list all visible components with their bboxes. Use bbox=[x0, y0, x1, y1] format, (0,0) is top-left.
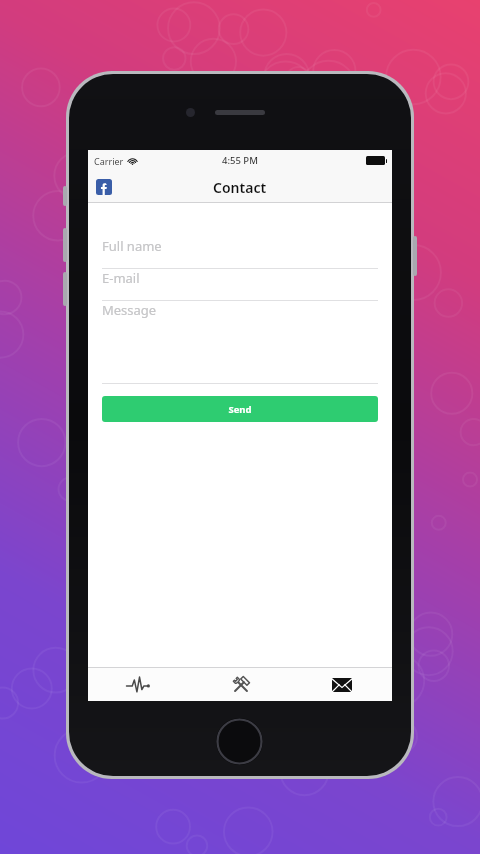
button[interactable]: Activity bbox=[88, 668, 190, 701]
staticText: E-mail bbox=[102, 269, 140, 287]
staticText: Carrier bbox=[94, 155, 124, 167]
staticText: Send bbox=[228, 403, 252, 416]
button[interactable]: Tools bbox=[190, 668, 291, 701]
button[interactable]: Mail bbox=[291, 668, 392, 701]
button[interactable]: Send bbox=[102, 396, 378, 422]
staticText: Contact bbox=[213, 178, 267, 197]
staticText: Full name bbox=[102, 237, 162, 255]
button[interactable]: E-mail bbox=[102, 269, 378, 301]
button[interactable]: Full name bbox=[102, 237, 378, 269]
staticText: 4:55 PM bbox=[222, 154, 258, 167]
staticText: Message bbox=[102, 301, 157, 319]
button[interactable]: Facebook bbox=[96, 179, 112, 195]
button[interactable]: Message bbox=[102, 301, 378, 384]
